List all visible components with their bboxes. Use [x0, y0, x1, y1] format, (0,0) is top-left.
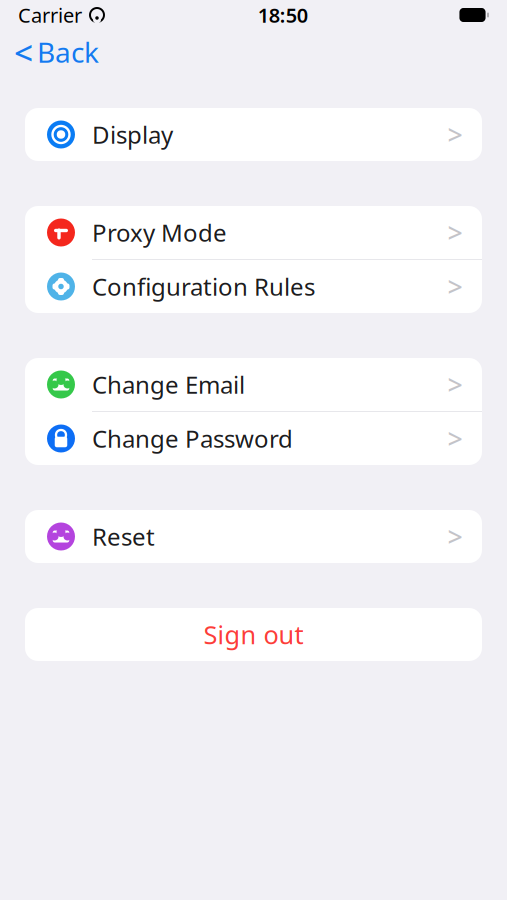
- staticText: Reset: [92, 521, 155, 552]
- staticText: >: [447, 117, 462, 152]
- button[interactable]: <: [0, 30, 113, 74]
- button[interactable]: Display: [25, 108, 482, 161]
- staticText: >: [447, 421, 462, 456]
- staticText: <: [14, 30, 33, 74]
- staticText: Change Password: [92, 423, 293, 454]
- button[interactable]: Change Email: [25, 358, 482, 411]
- staticText: Sign out: [203, 618, 303, 651]
- staticText: Carrier: [18, 2, 82, 28]
- staticText: >: [447, 215, 462, 250]
- staticText: Display: [92, 119, 173, 150]
- button[interactable]: Sign out: [0, 608, 507, 661]
- staticText: Configuration Rules: [92, 271, 315, 302]
- staticText: Change Email: [92, 369, 245, 400]
- staticText: Back: [37, 33, 99, 71]
- button[interactable]: Reset: [25, 510, 482, 563]
- staticText: >: [447, 367, 462, 402]
- button[interactable]: Proxy Mode: [25, 206, 482, 259]
- button[interactable]: Configuration Rules: [25, 260, 482, 313]
- staticText: Proxy Mode: [92, 217, 227, 248]
- staticText: 18:50: [258, 2, 308, 28]
- button[interactable]: Change Password: [25, 412, 482, 465]
- staticText: >: [447, 269, 462, 304]
- staticText: >: [447, 519, 462, 554]
